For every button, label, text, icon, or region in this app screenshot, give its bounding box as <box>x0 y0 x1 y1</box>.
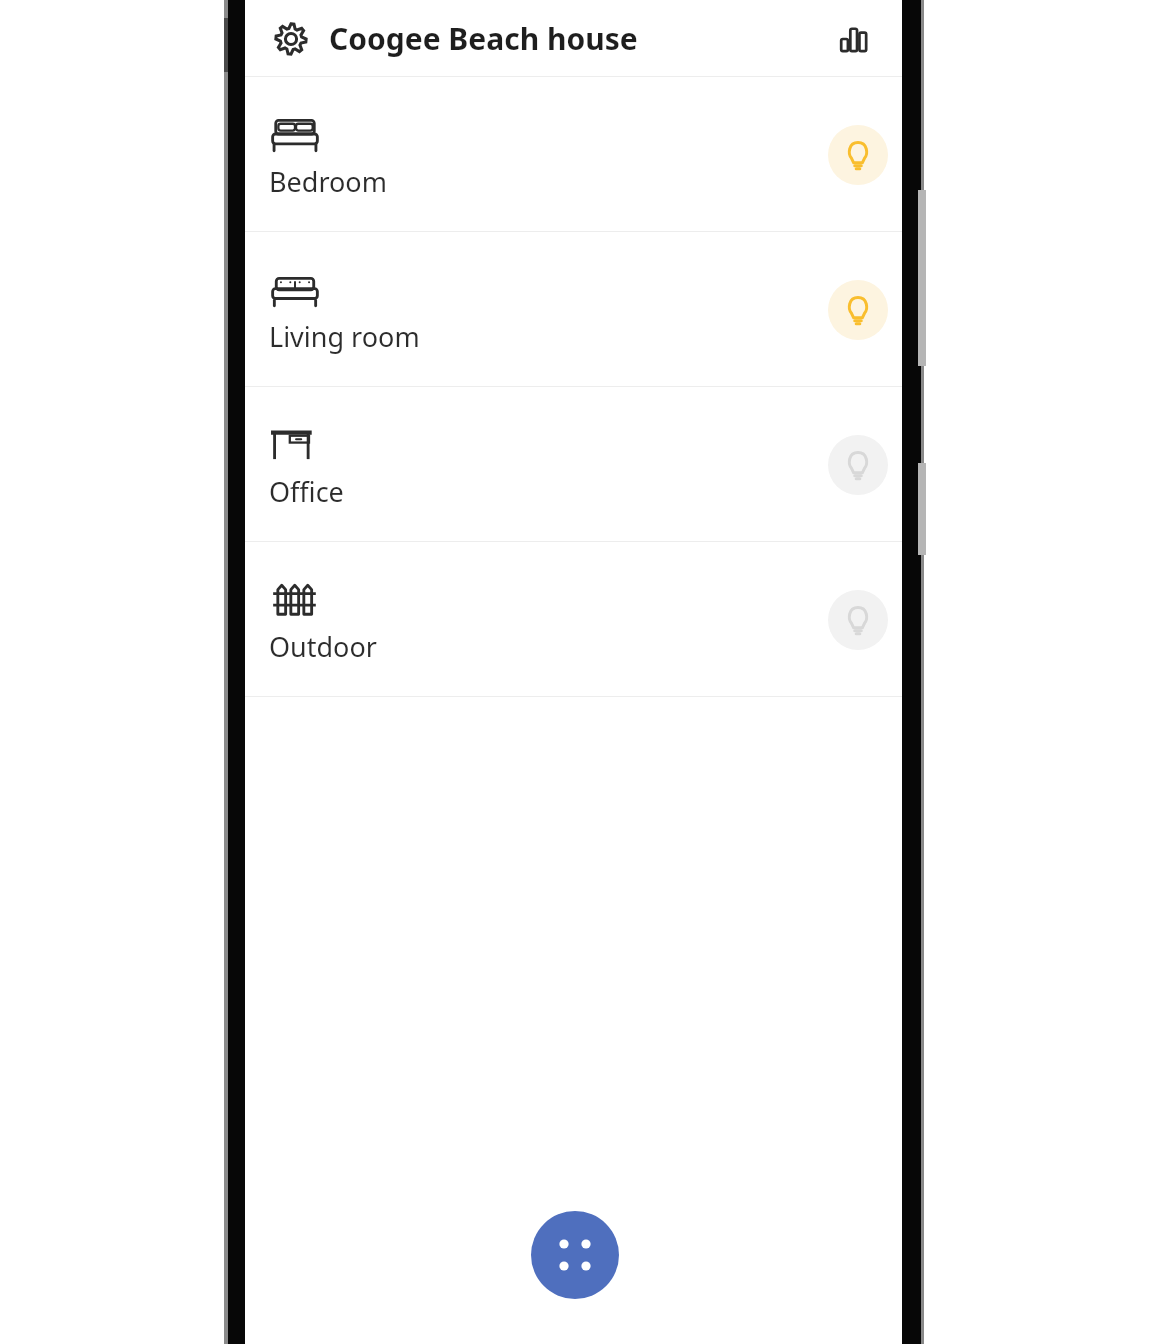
staticText: Bedroom <box>269 163 387 200</box>
button[interactable]: Toggle Office light <box>828 435 888 495</box>
button[interactable]: Living room <box>245 232 902 387</box>
staticText: Living room <box>269 318 420 355</box>
button[interactable]: Settings <box>267 15 315 63</box>
button[interactable]: Outdoor <box>245 542 902 697</box>
staticText: Office <box>269 473 344 510</box>
button[interactable]: Bedroom <box>245 77 902 232</box>
button[interactable]: Statistics <box>830 15 878 63</box>
staticText: Outdoor <box>269 628 377 665</box>
button[interactable]: Toggle Outdoor light <box>828 590 888 650</box>
button[interactable]: Toggle Living room light <box>828 280 888 340</box>
button[interactable]: Office <box>245 387 902 542</box>
button[interactable]: Add device <box>531 1211 619 1299</box>
button[interactable]: Toggle Bedroom light <box>828 125 888 185</box>
staticText: Coogee Beach house <box>329 18 638 59</box>
